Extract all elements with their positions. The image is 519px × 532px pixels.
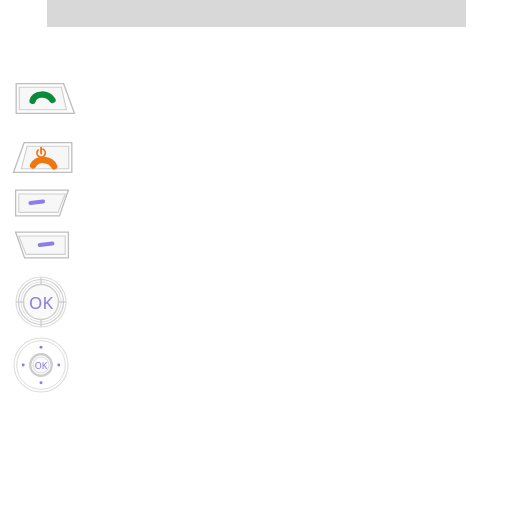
button[interactable]: Right soft key [13, 228, 71, 262]
staticText: OK [15, 291, 67, 343]
button[interactable]: Call key [14, 81, 76, 117]
staticText: OK [13, 359, 69, 415]
button[interactable]: OK navigation key [15, 276, 67, 328]
button[interactable]: Four way navigation key [13, 337, 69, 393]
button[interactable]: Left soft key [13, 186, 71, 220]
button[interactable]: End call and power key [12, 140, 74, 176]
